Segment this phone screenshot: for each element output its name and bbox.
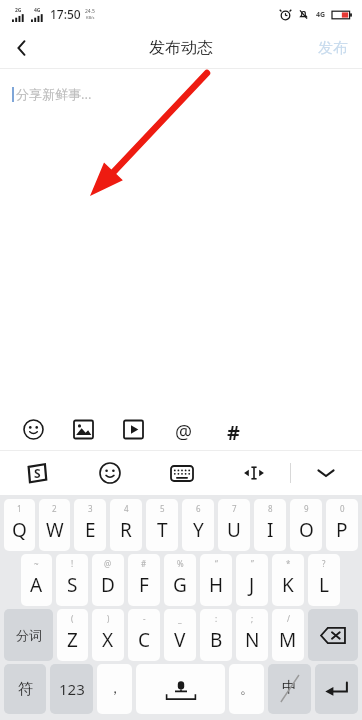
button[interactable]: / — [272, 609, 304, 661]
button[interactable]: 7 — [218, 499, 250, 551]
staticText: : — [215, 613, 218, 624]
staticText: ( — [71, 613, 74, 624]
staticText: A — [30, 572, 43, 598]
staticText: ? — [322, 558, 326, 569]
staticText: E — [85, 517, 96, 543]
button[interactable]: Cursor move — [218, 451, 290, 495]
button[interactable]: Back — [0, 28, 44, 68]
staticText: ” — [251, 558, 254, 569]
staticText: ! — [71, 558, 74, 569]
staticText: 3 — [88, 503, 93, 514]
button[interactable]: Image — [66, 412, 100, 446]
staticText: C — [138, 627, 151, 653]
button[interactable]: 分词 — [4, 609, 53, 661]
staticText: 2 — [52, 503, 57, 514]
button[interactable]: : — [200, 609, 232, 661]
button[interactable]: Emoji — [73, 451, 146, 495]
staticText: 4G — [34, 7, 41, 14]
button[interactable]: 中 — [268, 664, 311, 714]
staticText: W — [46, 517, 64, 543]
button[interactable]: ) — [92, 609, 124, 661]
staticText: 分享新鲜事... — [16, 85, 92, 103]
staticText: I — [267, 517, 274, 543]
staticText: D — [101, 572, 115, 598]
button[interactable]: “ — [200, 554, 232, 606]
button[interactable]: * — [272, 554, 304, 606]
staticText: 4G — [316, 10, 326, 20]
staticText: ) — [107, 613, 110, 624]
button[interactable]: 8 — [254, 499, 286, 551]
staticText: B — [210, 627, 223, 653]
button[interactable]: Keyboard layout — [146, 451, 218, 495]
staticText: 4 — [124, 503, 129, 514]
button[interactable]: Mention — [166, 412, 200, 446]
button[interactable]: 5 — [146, 499, 178, 551]
button[interactable]: 6 — [182, 499, 214, 551]
button[interactable]: Video — [116, 412, 150, 446]
staticText: 中 — [282, 678, 297, 697]
button[interactable]: 1 — [4, 499, 35, 551]
button[interactable]: # — [128, 554, 160, 606]
staticText: Y — [193, 517, 204, 543]
button[interactable]: @ — [92, 554, 124, 606]
button[interactable]: 。 — [229, 664, 264, 714]
button[interactable]: 符 — [4, 664, 46, 714]
staticText: 发布 — [318, 39, 348, 58]
staticText: 17:50 — [50, 6, 81, 22]
staticText: # — [227, 419, 240, 440]
staticText: P — [336, 517, 348, 543]
staticText: “ — [215, 558, 218, 569]
staticText: ; — [251, 613, 254, 624]
staticText: ~ — [34, 558, 39, 569]
button[interactable]: _ — [164, 609, 196, 661]
staticText: O — [299, 517, 314, 543]
staticText: ， — [108, 680, 122, 698]
staticText: J — [249, 572, 255, 598]
staticText: Z — [67, 627, 78, 653]
button[interactable]: Topic — [216, 412, 250, 446]
button[interactable]: 9 — [290, 499, 322, 551]
button[interactable]: ; — [236, 609, 268, 661]
button[interactable]: ~ — [21, 554, 52, 606]
staticText: 123 — [59, 679, 85, 699]
button[interactable]: ( — [57, 609, 88, 661]
staticText: S — [67, 572, 78, 598]
button[interactable]: 123 — [50, 664, 93, 714]
button[interactable]: Hide keyboard — [290, 451, 362, 495]
staticText: M — [279, 627, 297, 653]
button[interactable]: Sogou — [0, 451, 73, 495]
button[interactable]: 发布 — [318, 39, 348, 58]
staticText: 1 — [17, 503, 22, 514]
staticText: R — [120, 517, 132, 543]
button[interactable]: ” — [236, 554, 268, 606]
button[interactable]: % — [164, 554, 196, 606]
staticText: * — [286, 558, 291, 569]
staticText: S — [34, 465, 41, 481]
staticText: KB/s — [86, 15, 95, 20]
button[interactable]: - — [128, 609, 160, 661]
staticText: @ — [104, 558, 112, 569]
button[interactable]: Enter — [315, 664, 358, 714]
button[interactable]: ! — [56, 554, 88, 606]
button[interactable]: 4 — [110, 499, 142, 551]
staticText: @ — [175, 419, 193, 440]
staticText: 2G — [15, 7, 22, 14]
button[interactable]: Emoji — [16, 412, 50, 446]
staticText: 。 — [240, 680, 254, 698]
button[interactable]: Space / voice input — [136, 664, 225, 714]
staticText: L — [319, 572, 329, 598]
button[interactable]: 3 — [74, 499, 106, 551]
staticText: 6 — [196, 503, 201, 514]
button[interactable]: ， — [97, 664, 132, 714]
button[interactable]: 0 — [326, 499, 358, 551]
button[interactable]: 2 — [39, 499, 70, 551]
staticText: 8 — [268, 503, 273, 514]
staticText: % — [177, 558, 184, 569]
staticText: F — [139, 572, 149, 598]
staticText: - — [143, 613, 146, 624]
button[interactable]: ? — [308, 554, 340, 606]
staticText: V — [174, 627, 186, 653]
staticText: 7 — [232, 503, 237, 514]
button[interactable]: Delete — [308, 609, 358, 661]
staticText: 发布动态 — [149, 38, 213, 58]
